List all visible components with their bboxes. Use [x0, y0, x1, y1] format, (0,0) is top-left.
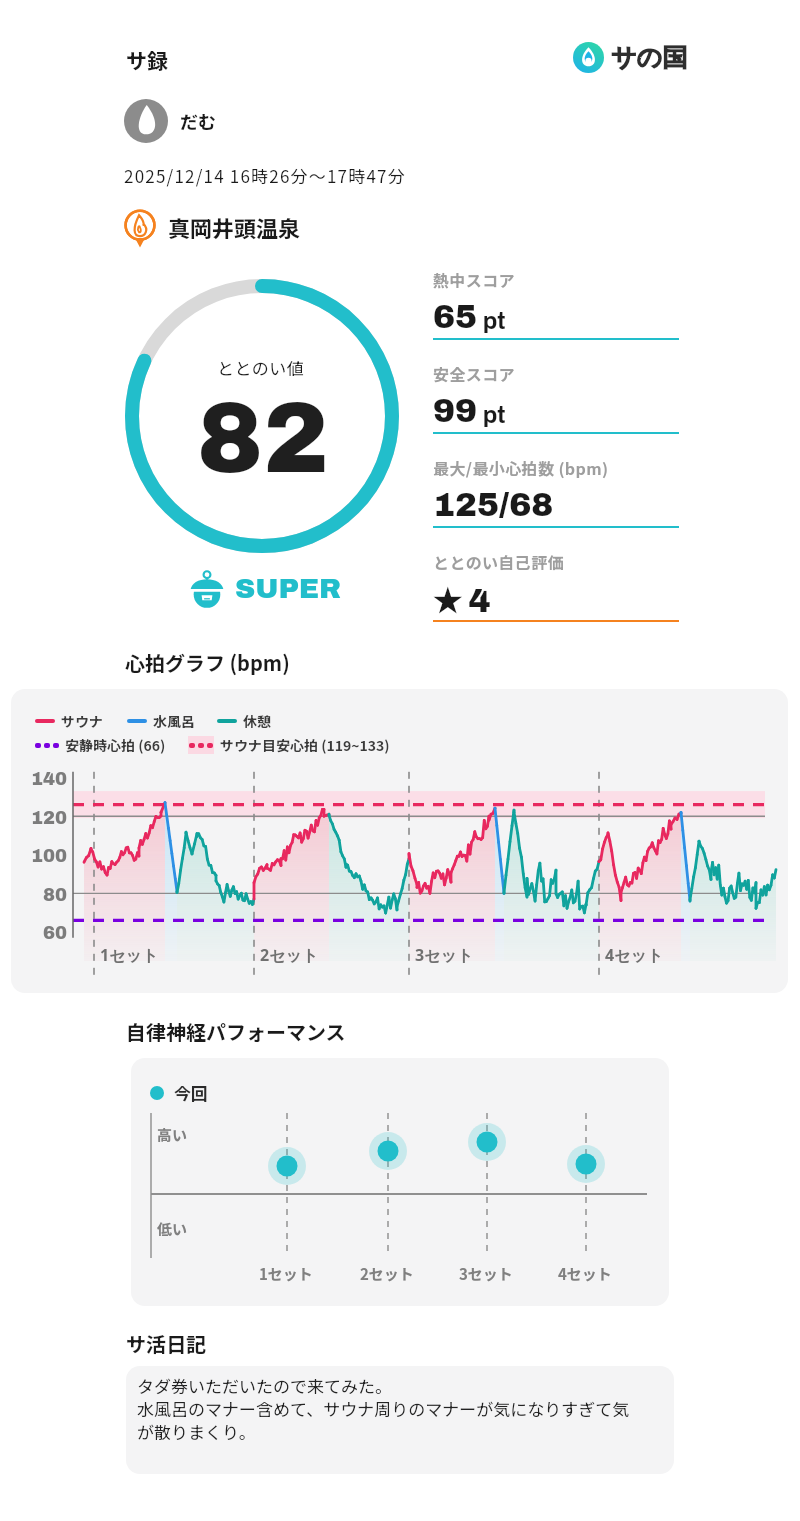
staticText: 最大/最小心拍数 (bpm) — [433, 456, 609, 479]
staticText: 心拍グラフ (bpm) — [125, 648, 290, 677]
staticText: ととのい自己評価 — [433, 550, 565, 573]
staticText: 安静時心拍 (66) — [65, 735, 166, 755]
staticText: 120 — [31, 808, 68, 828]
staticText: 水風呂 — [153, 711, 195, 731]
staticText: だむ — [180, 108, 216, 134]
staticText: SUPER — [235, 573, 341, 603]
staticText: タダ券いただいたので来てみた。 水風呂のマナー含めて、サウナ周りのマナーが気にな… — [137, 1373, 630, 1444]
staticText: 2セット — [360, 1263, 414, 1285]
staticText: 82 — [197, 385, 330, 493]
staticText: サの国 — [611, 42, 688, 73]
staticText: 低い — [157, 1218, 188, 1240]
staticText: サ活日記 — [126, 1329, 206, 1358]
staticText: サウナ — [61, 711, 103, 731]
staticText: 1セット — [100, 944, 159, 966]
staticText: 安全スコア — [433, 362, 516, 385]
staticText: 140 — [31, 769, 68, 789]
staticText: 125/68 — [433, 487, 554, 523]
staticText: 99 — [433, 393, 478, 429]
staticText: 4セット — [558, 1263, 612, 1285]
staticText: 1セット — [259, 1263, 313, 1285]
staticText: 65 — [433, 299, 478, 335]
staticText: ★ 4 — [433, 581, 491, 619]
staticText: 3セット — [415, 944, 474, 966]
staticText: サウナ目安心拍 (119~133) — [220, 735, 390, 755]
staticText: 2025/12/14 16時26分〜17時47分 — [124, 163, 406, 188]
staticText: ととのい値 — [217, 355, 305, 380]
staticText: 高い — [157, 1124, 188, 1146]
staticText: 80 — [43, 885, 68, 905]
staticText: 熱中スコア — [433, 268, 516, 291]
staticText: 真岡井頭温泉 — [168, 211, 301, 243]
staticText: 2セット — [260, 944, 319, 966]
button[interactable]: サの国 — [573, 42, 688, 73]
staticText: pt — [478, 402, 506, 428]
staticText: 休憩 — [243, 711, 271, 731]
staticText: pt — [478, 308, 506, 334]
staticText: 60 — [43, 923, 68, 943]
staticText: 4セット — [605, 944, 664, 966]
staticText: 3セット — [459, 1263, 513, 1285]
staticText: 自律神経パフォーマンス — [126, 1017, 346, 1046]
staticText: 今回 — [174, 1080, 208, 1105]
staticText: 100 — [31, 846, 68, 866]
staticText: サ録 — [126, 45, 168, 75]
